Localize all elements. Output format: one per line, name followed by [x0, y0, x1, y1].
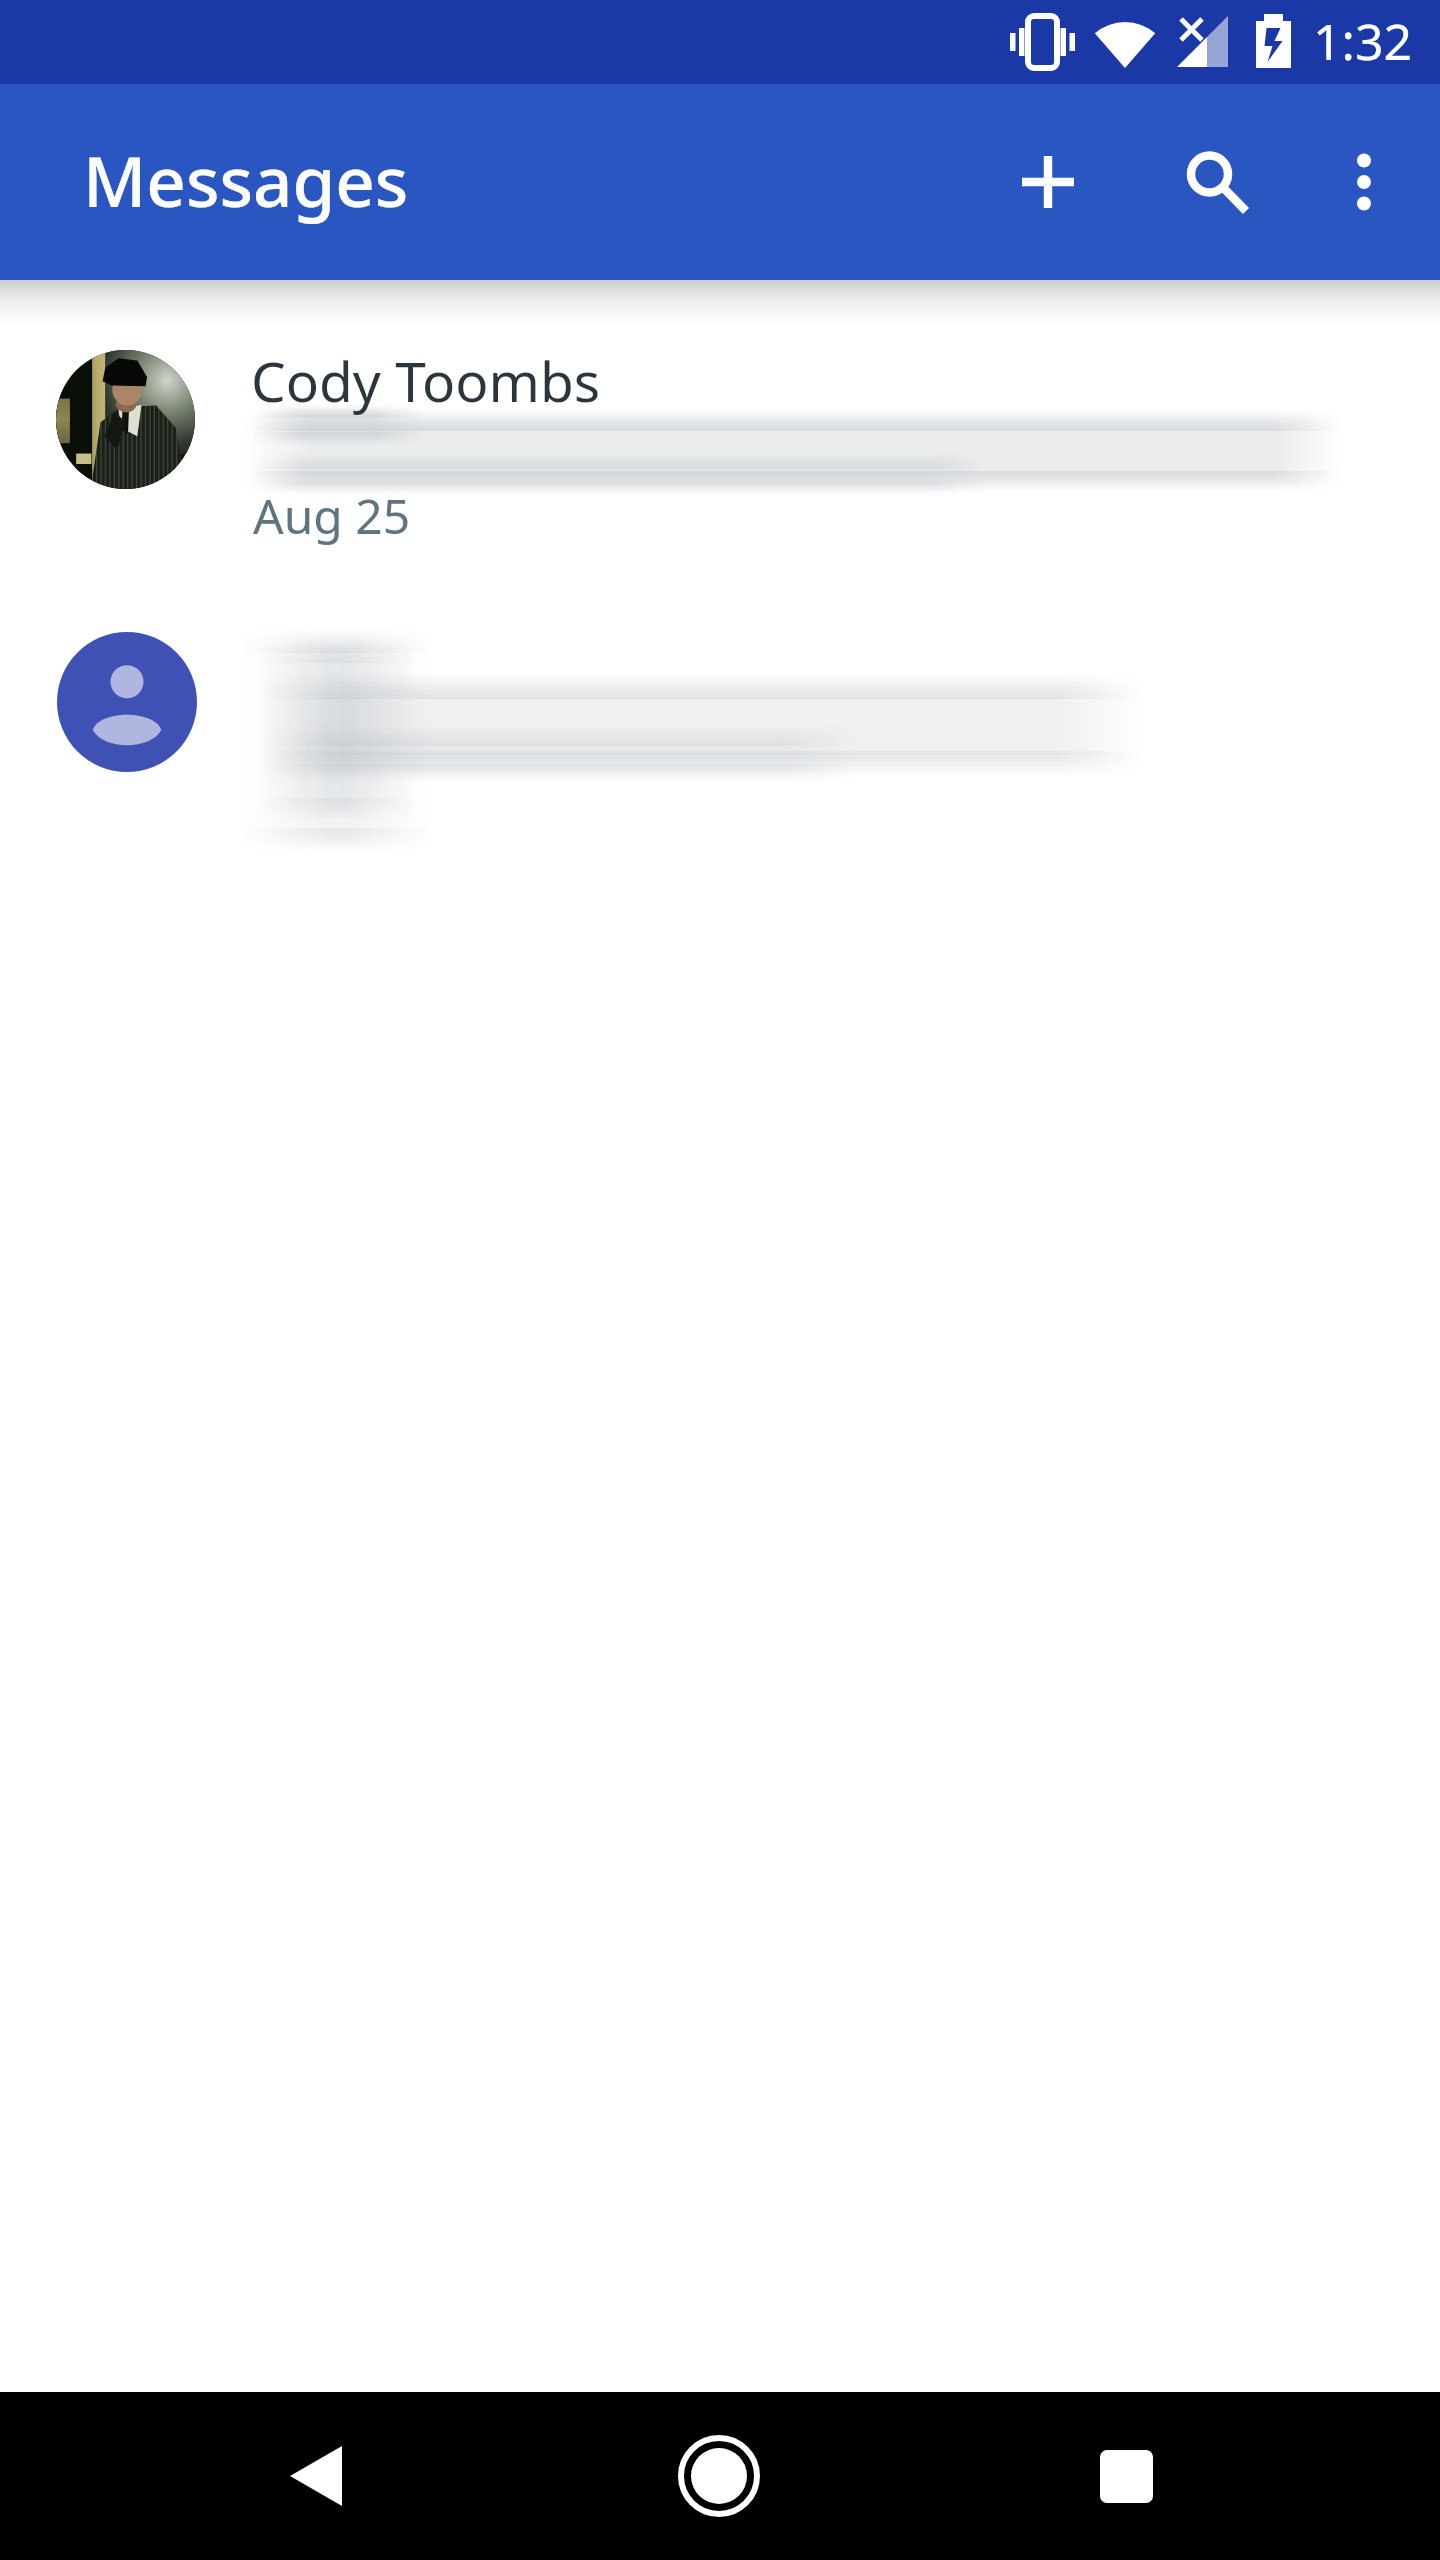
button[interactable]: Cody Toombs	[0, 280, 1440, 600]
button[interactable]	[0, 600, 1440, 900]
button[interactable]: Back	[216, 2392, 416, 2560]
button[interactable]: Search	[1131, 98, 1299, 266]
staticText: Cody Toombs	[251, 343, 601, 418]
staticText: Messages	[83, 133, 409, 227]
staticText: 1:32	[1313, 7, 1413, 75]
staticText: Aug 25	[253, 483, 411, 548]
button[interactable]: New conversation	[964, 98, 1132, 266]
button[interactable]: More options	[1290, 98, 1440, 248]
button[interactable]: Recent apps	[1026, 2392, 1226, 2560]
button[interactable]: Home	[619, 2392, 819, 2560]
